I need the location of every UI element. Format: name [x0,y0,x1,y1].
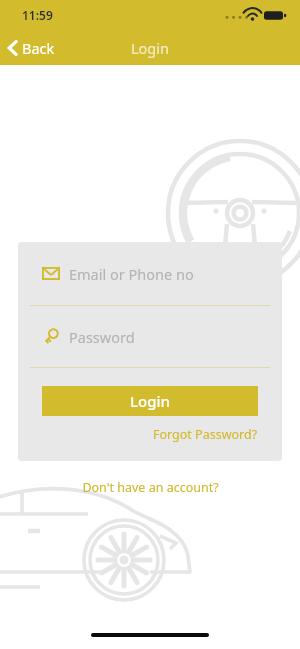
staticText: Password [69,327,135,347]
button[interactable]: Back [0,34,65,62]
button[interactable]: Don't have an account? [74,476,227,499]
button[interactable]: Email or Phone no [18,242,282,305]
button[interactable]: Password [18,306,282,367]
staticText: 11:59 [22,7,53,23]
staticText: Back [22,38,55,58]
button[interactable]: Forgot Password? [153,426,258,443]
staticText: Login [131,38,169,58]
staticText: Login [130,391,170,411]
staticText: Email or Phone no [69,264,194,284]
button[interactable]: Login [42,386,258,416]
